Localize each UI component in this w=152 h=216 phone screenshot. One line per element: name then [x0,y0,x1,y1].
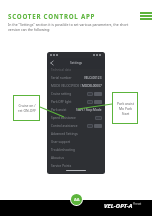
staticText: Start / Stop Mode [76,108,102,112]
button[interactable]: Park assist Mo Park Start [112,92,138,124]
button[interactable]: Park assist [51,106,102,114]
staticText: Technical data [51,68,72,72]
staticText: VELO-00123 [84,76,102,80]
staticText: VEL-OPT-A [104,202,133,210]
button[interactable]: Service Points [51,162,102,170]
staticText: Settings [70,61,83,65]
staticText: Advanced Settings [51,132,78,136]
staticText: MODEL00007 [82,84,102,88]
button[interactable]: Speed assistance [51,114,102,122]
button[interactable]: Serial number [51,74,102,82]
staticText: About us [51,156,64,160]
button[interactable]: Menu [140,12,152,20]
staticText: In the "Settings" section it is possible… [8,22,133,32]
staticText: Park assist Mo Park Start [117,101,134,116]
staticText: AA [74,197,80,202]
button[interactable]: User support [51,138,102,146]
staticText: Cruise setting [51,92,72,96]
staticText: Troubleshooting [51,148,75,152]
button[interactable]: Control assistance [51,122,102,130]
staticText: Service Points [51,164,72,168]
button[interactable]: Cruise on / ret ON-OFF [13,95,40,121]
staticText: Control assistance [51,124,78,128]
button[interactable]: Troubleshooting [51,146,102,154]
button[interactable]: Cruise setting [51,90,102,98]
button[interactable]: Park OFF light [51,98,102,106]
staticText: SCOOTER CONTROL APP [8,12,96,20]
button[interactable]: About us [51,154,102,162]
staticText: ®reset [133,202,142,206]
button[interactable]: Back [50,61,54,65]
staticText: Cruise on / ret ON-OFF [18,103,36,113]
staticText: Serial number [51,76,72,80]
staticText: Park OFF light [51,100,72,104]
staticText: User support [51,140,71,144]
staticText: Speed assistance [51,116,76,120]
staticText: Park assist [51,108,67,112]
button[interactable]: Advanced Settings [51,130,102,138]
button[interactable]: Logo [71,194,82,205]
button[interactable]: MODE VELOCIPEDE C [51,82,102,90]
staticText: MODE VELOCIPEDE C [51,84,82,88]
